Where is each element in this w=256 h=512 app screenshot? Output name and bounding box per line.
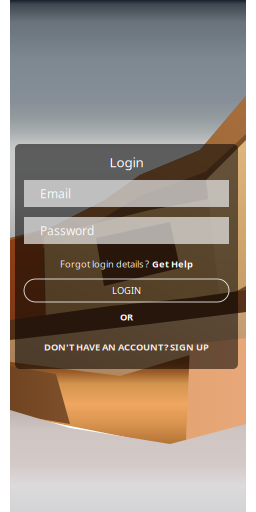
staticText: Forgot login details ? (60, 258, 149, 270)
button[interactable]: Forgot login details ? (24, 258, 229, 270)
staticText: Password (40, 222, 94, 238)
button[interactable]: DON'T HAVE AN ACCOUNT? SIGN UP (24, 342, 229, 352)
button[interactable]: Password (24, 217, 229, 244)
staticText: OR (120, 311, 133, 323)
staticText: DON'T HAVE AN ACCOUNT? SIGN UP (44, 341, 209, 353)
button[interactable]: LOGIN (24, 279, 229, 302)
staticText: Email (40, 185, 71, 201)
staticText: LOGIN (112, 284, 141, 297)
button[interactable]: Email (24, 180, 229, 207)
staticText: Get Help (152, 258, 193, 270)
staticText: Login (109, 153, 143, 171)
